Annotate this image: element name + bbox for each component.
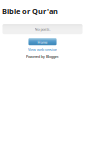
button[interactable]: Home: [28, 38, 56, 45]
button[interactable]: View web version: [28, 47, 57, 52]
staticText: View web version: [28, 47, 57, 52]
staticText: Home: [37, 40, 47, 45]
button[interactable]: Powered by Blogger.: [26, 54, 59, 59]
staticText: No posts.: [34, 26, 50, 32]
staticText: Bible or Qur'an: [2, 6, 58, 16]
staticText: Powered by Blogger.: [26, 54, 59, 59]
